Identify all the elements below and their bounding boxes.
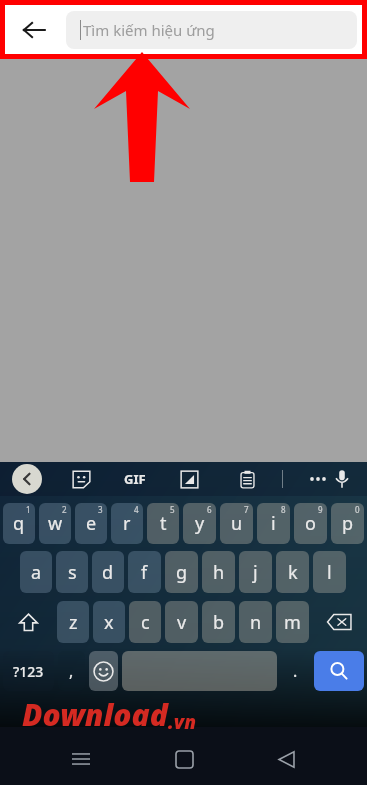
button[interactable]: Back <box>6 5 62 55</box>
button[interactable]: GIF <box>124 470 146 488</box>
button[interactable]: t <box>147 503 179 544</box>
staticText: s <box>68 560 77 585</box>
staticText: h <box>213 560 225 585</box>
staticText: v <box>177 610 187 635</box>
button[interactable]: g <box>165 551 198 593</box>
staticText: m <box>284 610 301 635</box>
staticText: k <box>288 560 298 585</box>
staticText: ?123 <box>13 662 44 681</box>
button[interactable]: f <box>128 551 161 593</box>
button[interactable]: Collapse toolbar <box>12 464 42 494</box>
staticText: 7 <box>244 504 249 515</box>
staticText: Tìm kiếm hiệu ứng <box>83 20 215 40</box>
button[interactable]: z <box>57 601 89 643</box>
staticText: 2 <box>62 504 67 515</box>
staticText: r <box>123 511 131 536</box>
staticText: w <box>48 511 63 536</box>
button[interactable]: n <box>239 601 272 643</box>
button[interactable]: Shift <box>3 601 53 643</box>
staticText: x <box>104 610 114 635</box>
button[interactable]: v <box>165 601 198 643</box>
button[interactable]: r <box>111 503 143 544</box>
button[interactable]: Back <box>264 737 308 781</box>
staticText: l <box>327 560 332 585</box>
staticText: t <box>160 511 167 536</box>
button[interactable]: d <box>92 551 124 593</box>
staticText: 0 <box>355 504 360 515</box>
staticText: u <box>231 511 243 536</box>
staticText: GIF <box>124 470 146 488</box>
button[interactable]: p <box>331 503 364 544</box>
staticText: j <box>253 560 258 585</box>
staticText: 8 <box>281 504 286 515</box>
button[interactable]: k <box>276 551 309 593</box>
staticText: o <box>305 511 316 536</box>
staticText: d <box>102 560 114 585</box>
button[interactable]: o <box>294 503 327 544</box>
staticText: Download <box>22 694 168 735</box>
staticText: 4 <box>134 504 139 515</box>
button[interactable]: s <box>56 551 88 593</box>
staticText: 3 <box>98 504 103 515</box>
button[interactable]: Translate <box>176 466 202 492</box>
button[interactable]: l <box>313 551 346 593</box>
button[interactable]: b <box>202 601 235 643</box>
button[interactable]: Clipboard <box>234 466 260 492</box>
staticText: z <box>69 610 78 635</box>
staticText: b <box>213 610 225 635</box>
staticText: f <box>141 560 148 585</box>
staticText: .vn <box>168 709 196 735</box>
staticText: 5 <box>170 504 175 515</box>
staticText: i <box>271 511 276 536</box>
button[interactable]: Backspace <box>313 601 364 643</box>
staticText: c <box>141 610 150 635</box>
button[interactable]: h <box>202 551 235 593</box>
staticText: e <box>86 511 97 536</box>
button[interactable]: x <box>93 601 125 643</box>
staticText: . <box>293 660 298 682</box>
button[interactable]: Recent apps <box>59 737 103 781</box>
button[interactable]: Tìm kiếm hiệu ứng <box>66 11 357 49</box>
button[interactable]: c <box>129 601 161 643</box>
button[interactable]: a <box>20 551 52 593</box>
staticText: , <box>69 660 74 682</box>
staticText: n <box>250 610 262 635</box>
button[interactable]: Voice input <box>331 464 353 494</box>
button[interactable]: q <box>3 503 35 544</box>
button[interactable]: , <box>58 651 85 691</box>
staticText: q <box>13 511 25 536</box>
button[interactable]: ?123 <box>3 651 54 691</box>
button[interactable]: e <box>75 503 107 544</box>
staticText: a <box>31 560 42 585</box>
button[interactable]: y <box>183 503 216 544</box>
button[interactable]: More options <box>305 466 331 492</box>
button[interactable]: Stickers <box>68 466 94 492</box>
button[interactable]: Emoji <box>89 651 118 691</box>
button[interactable]: w <box>39 503 71 544</box>
staticText: p <box>342 511 354 536</box>
button[interactable]: Search <box>314 651 364 691</box>
staticText: 9 <box>318 504 323 515</box>
button[interactable]: Space <box>122 651 277 691</box>
staticText: 1 <box>26 504 31 515</box>
button[interactable]: u <box>220 503 253 544</box>
button[interactable]: . <box>281 651 310 691</box>
staticText: g <box>176 560 188 585</box>
button[interactable]: Home <box>162 737 206 781</box>
button[interactable]: m <box>276 601 309 643</box>
button[interactable]: i <box>257 503 290 544</box>
staticText: y <box>195 511 205 536</box>
staticText: 6 <box>207 504 212 515</box>
button[interactable]: j <box>239 551 272 593</box>
